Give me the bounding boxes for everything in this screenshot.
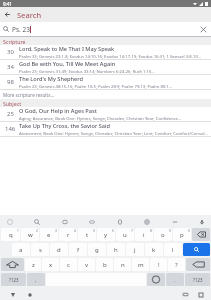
button[interactable]: Sticker (86, 216, 97, 227)
staticText: z (32, 261, 35, 269)
button[interactable]: Back (8, 290, 17, 299)
staticText: God Be with You, Till We Meet Again (19, 60, 116, 68)
button[interactable]: GIF (59, 216, 70, 227)
button[interactable]: Search (183, 243, 210, 256)
button[interactable]: v (78, 258, 95, 271)
button[interactable]: Emoji (147, 273, 165, 286)
button[interactable]: o (154, 228, 172, 241)
button[interactable]: g (88, 243, 106, 256)
staticText: p (180, 231, 184, 239)
staticText: g (95, 246, 99, 254)
staticText: v (85, 261, 89, 269)
button[interactable]: m (132, 258, 149, 271)
button[interactable]: t (78, 228, 96, 241)
button[interactable]: More (169, 216, 180, 227)
button[interactable]: Search (31, 216, 42, 227)
button[interactable]: ?123 (1, 273, 26, 286)
button[interactable]: f (69, 243, 87, 256)
button[interactable]: Back (0, 7, 15, 22)
button[interactable]: Recents (196, 290, 205, 299)
staticText: q (9, 231, 13, 239)
button[interactable]: e (40, 228, 58, 241)
button[interactable]: x (42, 258, 59, 271)
button[interactable]: Shift (1, 258, 24, 271)
button[interactable]: Backspace (192, 228, 210, 241)
button[interactable]: . (166, 273, 184, 286)
staticText: 2 (36, 229, 38, 233)
button[interactable]: n (114, 258, 131, 271)
button[interactable]: j (126, 243, 144, 256)
button[interactable]: 146 (0, 122, 211, 137)
button[interactable]: 25 (0, 107, 211, 122)
staticText: Search (17, 10, 42, 20)
staticText: Psalm 33; Genesis 22:1-8; Exodus 14:10-1… (19, 54, 202, 59)
button[interactable]: ! (150, 258, 167, 271)
staticText: 5 (93, 229, 95, 233)
staticText: 146 (5, 125, 16, 133)
staticText: Scripture (3, 38, 26, 45)
staticText: ?123 (9, 277, 19, 283)
button[interactable]: b (96, 258, 113, 271)
button[interactable]: Clipboard (114, 216, 125, 227)
staticText: d (57, 246, 61, 254)
staticText: ! (158, 261, 160, 269)
button[interactable]: y (97, 228, 115, 241)
button[interactable]: Keyboard (181, 290, 190, 299)
button[interactable]: i (135, 228, 153, 241)
staticText: 3 (55, 229, 57, 233)
button[interactable]: r (59, 228, 77, 241)
button[interactable]: 98 (0, 75, 211, 90)
button[interactable]: Ps. 23 (0, 22, 211, 36)
button[interactable]: , (27, 273, 45, 286)
button[interactable]: ? (168, 258, 185, 271)
button[interactable]: a (12, 243, 30, 256)
button[interactable]: ?123 (185, 273, 210, 286)
staticText: 8 (150, 229, 152, 233)
button[interactable]: p (173, 228, 191, 241)
staticText: x (49, 261, 53, 269)
staticText: O God, Our Help in Ages Past (19, 107, 97, 115)
button[interactable]: Home (25, 290, 34, 299)
staticText: ? (175, 261, 178, 269)
button[interactable]: Voice input (196, 216, 207, 227)
button[interactable]: Backspace (186, 258, 210, 271)
staticText: Take Up Thy Cross, the Savior Said (19, 122, 110, 130)
button[interactable]: h (107, 243, 125, 256)
staticText: 30 (7, 48, 14, 56)
staticText: f (77, 246, 80, 254)
button[interactable]: w (21, 228, 39, 241)
button[interactable]: q (1, 228, 20, 241)
staticText: Aging; Assurance; Book One: Hymns; Songs… (19, 116, 182, 121)
staticText: 0 (188, 229, 190, 233)
staticText: b (103, 261, 107, 269)
staticText: 25 (7, 110, 14, 118)
staticText: 98 (7, 78, 14, 86)
button[interactable]: s (31, 243, 49, 256)
button[interactable]: c (60, 258, 77, 271)
button[interactable]: 30 (0, 45, 211, 60)
staticText: u (123, 231, 127, 239)
button[interactable]: More scripture results... (0, 90, 211, 99)
button[interactable]: 34 (0, 60, 211, 75)
button[interactable]: Clear (197, 23, 209, 35)
button[interactable]: k (145, 243, 163, 256)
staticText: e (47, 231, 51, 239)
staticText: 34 (7, 63, 14, 71)
staticText: a (19, 246, 23, 254)
button[interactable]: Google (4, 216, 15, 227)
button[interactable]: d (50, 243, 68, 256)
staticText: Ps. 23 (12, 25, 30, 34)
staticText: Subject (3, 100, 22, 107)
button[interactable]: l (164, 243, 182, 256)
staticText: 7 (131, 229, 133, 233)
staticText: n (121, 261, 125, 269)
staticText: 6 (112, 229, 114, 233)
staticText: , (35, 277, 37, 283)
button[interactable]: u (116, 228, 134, 241)
button[interactable]: Settings (141, 216, 152, 227)
staticText: Psalm 23; Genesis 48:15-16; Psalm 16:5; … (19, 84, 173, 89)
staticText: k (152, 246, 156, 254)
button[interactable]: z (25, 258, 41, 271)
staticText: The Lord's My Shepherd (19, 75, 84, 83)
